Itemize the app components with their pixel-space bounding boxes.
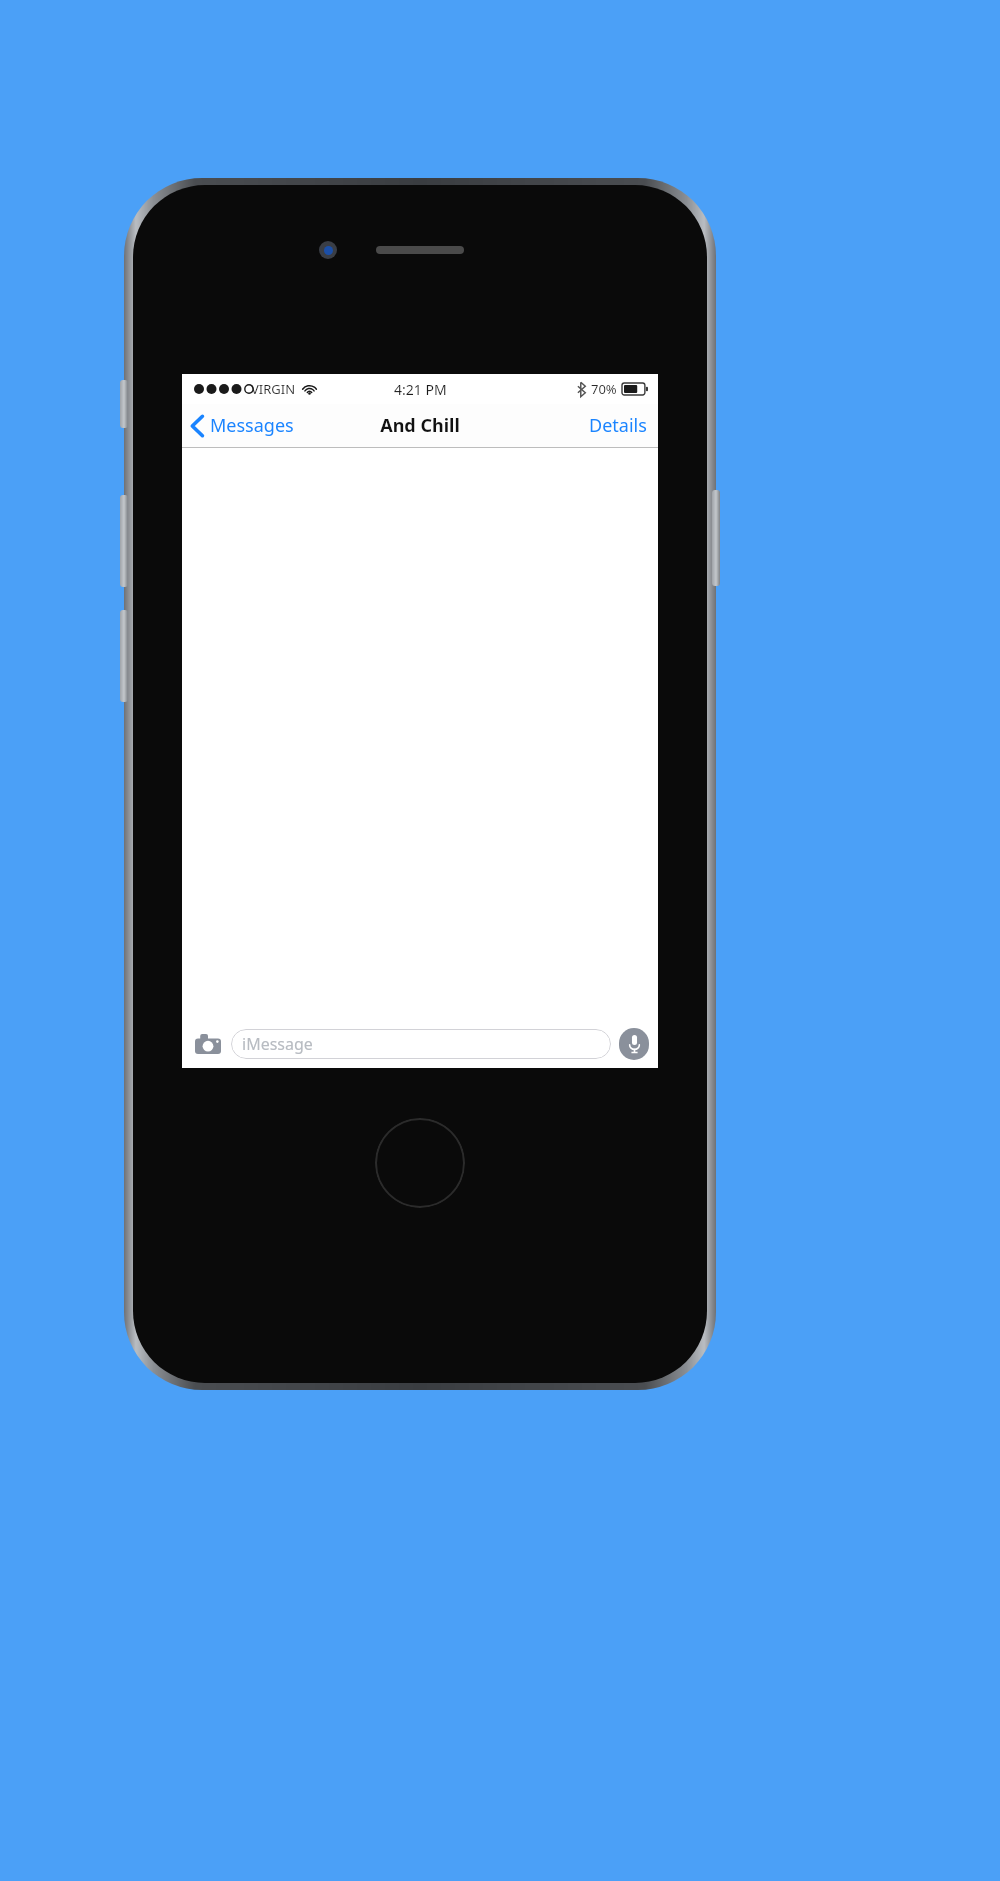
- staticText: Messages: [210, 413, 294, 438]
- button[interactable]: iMessage: [231, 1029, 611, 1059]
- staticText: VIRGIN: [251, 380, 296, 398]
- button[interactable]: Messages: [182, 404, 302, 447]
- staticText: 4:21 PM: [394, 380, 447, 399]
- staticText: And Chill: [380, 413, 460, 438]
- staticText: Details: [589, 413, 647, 438]
- button[interactable]: Camera: [191, 1027, 225, 1061]
- button[interactable]: Home: [375, 1118, 465, 1208]
- button[interactable]: Record audio: [619, 1028, 649, 1060]
- button[interactable]: Details: [578, 404, 658, 447]
- staticText: iMessage: [242, 1033, 313, 1055]
- staticText: 70%: [591, 380, 617, 398]
